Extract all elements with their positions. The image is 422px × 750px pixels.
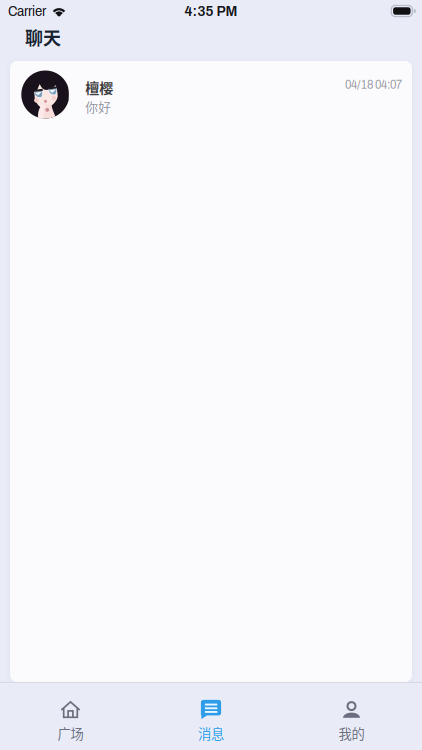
staticText: 4:35 PM [184,3,237,19]
staticText: Carrier [8,3,46,19]
staticText: 聊天 [25,24,61,50]
staticText: 04/18 04:07 [345,78,402,91]
button[interactable]: 我的 [281,682,422,750]
staticText: 檀樱 [85,77,113,97]
staticText: 你好 [85,97,111,115]
button[interactable]: 广场 [0,682,141,750]
staticText: 广场 [57,723,83,743]
button[interactable]: 檀樱 [10,61,412,128]
staticText: 消息 [198,723,224,743]
button[interactable]: 消息 [141,682,281,750]
staticText: 我的 [338,723,364,743]
